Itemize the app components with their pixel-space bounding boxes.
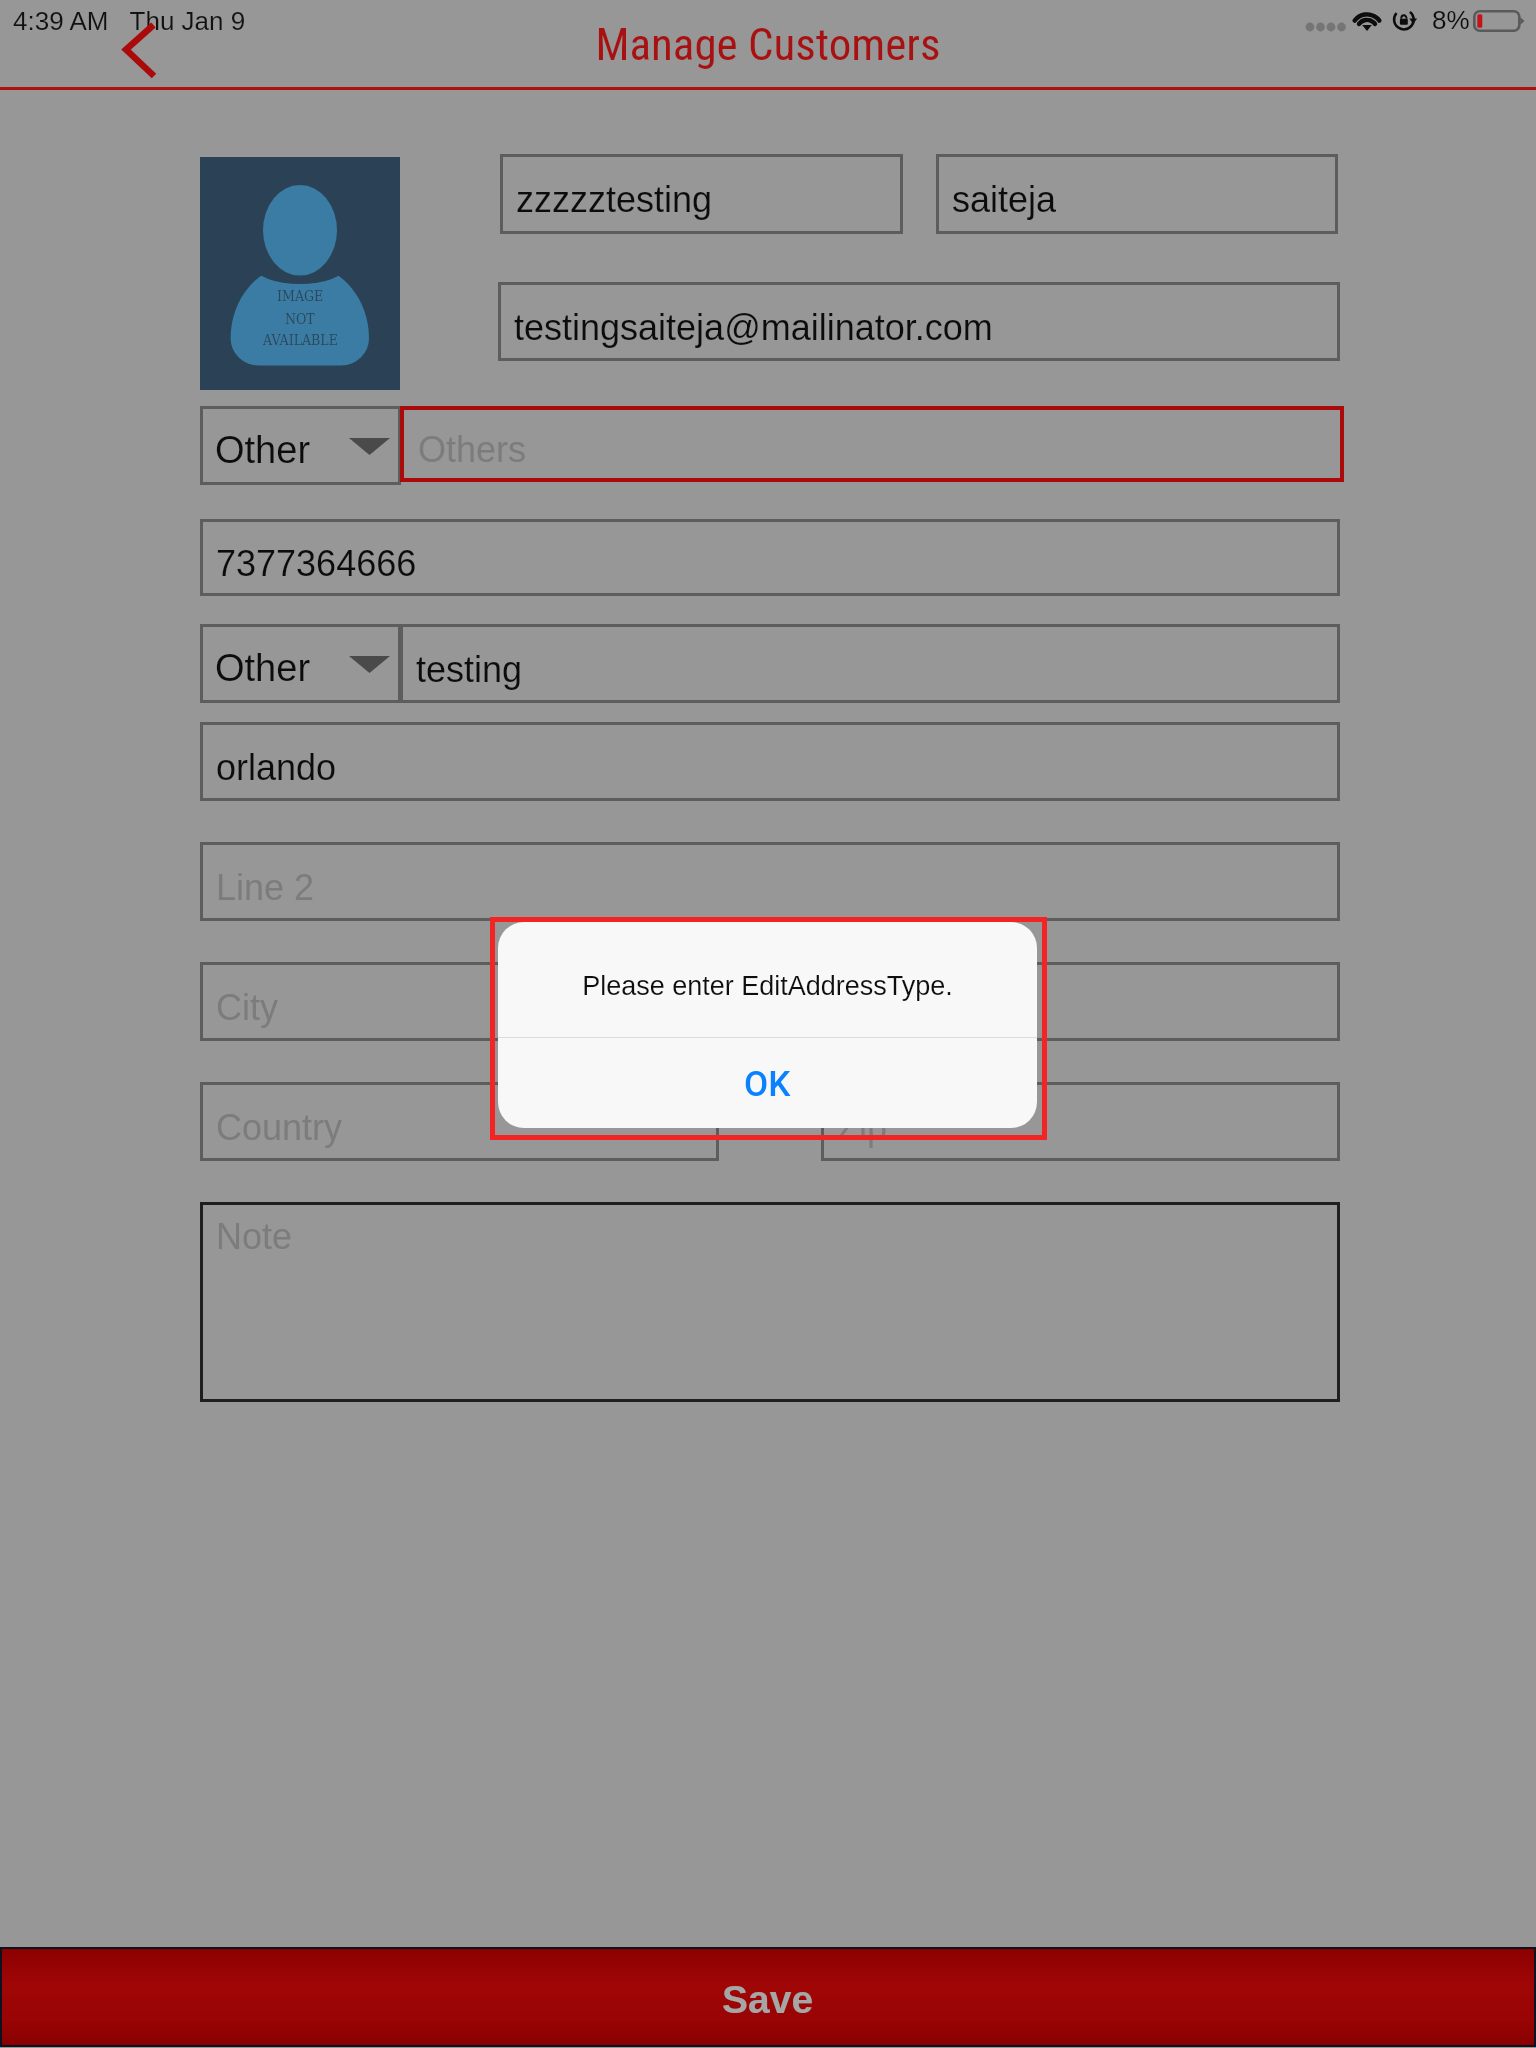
staticText: Note — [216, 1216, 293, 1256]
staticText: IMAGE — [277, 288, 324, 304]
button[interactable]: zzzzztesting — [500, 154, 903, 234]
button[interactable]: Other — [200, 624, 401, 703]
button[interactable]: testingsaiteja@mailinator.com — [498, 282, 1340, 361]
staticText: orlando — [216, 747, 337, 787]
staticText: 7377364666 — [216, 543, 417, 583]
staticText: zzzzztesting — [516, 179, 713, 219]
staticText: Country — [216, 1107, 343, 1147]
staticText: Please enter EditAddressType. — [498, 971, 1037, 1001]
button[interactable]: Customer photo, image not available — [200, 157, 400, 390]
button[interactable]: 7377364666 — [200, 519, 1340, 596]
staticText: Other — [215, 647, 311, 689]
button[interactable]: Country — [200, 1082, 719, 1161]
button[interactable]: Line 2 — [200, 842, 1340, 921]
button[interactable]: testing — [400, 624, 1340, 703]
staticText: City — [216, 987, 278, 1027]
staticText: NOT — [285, 311, 315, 327]
button[interactable]: Zip — [821, 1082, 1340, 1161]
staticText: 4:39 AM Thu Jan 9 — [13, 6, 246, 35]
staticText: Line 2 — [216, 867, 315, 907]
staticText: saiteja — [952, 179, 1057, 219]
staticText: AVAILABLE — [263, 332, 338, 348]
button[interactable]: Others — [400, 406, 1344, 482]
button[interactable]: Back — [118, 18, 170, 84]
staticText: Other — [215, 429, 311, 471]
button[interactable]: OK — [498, 1041, 1037, 1128]
button[interactable]: saiteja — [936, 154, 1338, 234]
button[interactable]: City — [200, 962, 1340, 1041]
button[interactable]: Other — [200, 406, 401, 485]
button[interactable]: Note — [200, 1202, 1340, 1402]
button[interactable]: Save — [2, 1949, 1534, 2045]
staticText: Save — [722, 1978, 814, 2022]
staticText: testingsaiteja@mailinator.com — [514, 307, 993, 347]
staticText: Manage Customers — [0, 18, 1536, 71]
staticText: Zip — [837, 1107, 888, 1147]
staticText: 8% — [1432, 5, 1470, 34]
button[interactable]: orlando — [200, 722, 1340, 801]
staticText: testing — [416, 649, 523, 689]
staticText: OK — [744, 1064, 791, 1105]
staticText: Others — [418, 429, 527, 469]
